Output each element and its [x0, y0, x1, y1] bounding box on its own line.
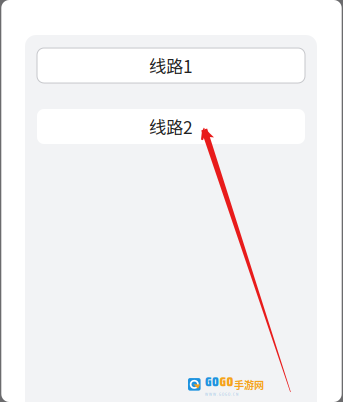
button[interactable]: 线路2 [37, 109, 305, 144]
staticText: 手游网 [234, 377, 264, 392]
button[interactable]: 线路1 [37, 48, 305, 83]
staticText: 线路2 [149, 114, 193, 139]
staticText: GO [205, 371, 219, 392]
staticText: GO [220, 371, 234, 392]
staticText: 线路1 [149, 53, 193, 78]
staticText: W W W . G O G O . C N [205, 391, 238, 398]
